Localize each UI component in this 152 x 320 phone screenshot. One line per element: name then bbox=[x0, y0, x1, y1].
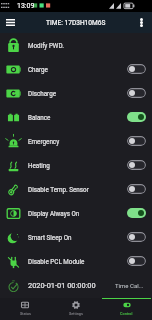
button[interactable]: Switch off bbox=[127, 160, 146, 170]
button[interactable]: Switch off bbox=[127, 184, 146, 194]
staticText: Modify PWD. bbox=[28, 42, 146, 49]
button[interactable]: Disable PCL Module bbox=[0, 249, 152, 273]
button[interactable]: Control bbox=[101, 298, 152, 320]
button[interactable]: Switch on bbox=[127, 208, 146, 218]
button[interactable]: More options bbox=[131, 12, 152, 33]
button[interactable]: Emergency bbox=[0, 129, 152, 153]
staticText: Disable Temp. Sensor bbox=[28, 186, 127, 193]
button[interactable]: Menu bbox=[0, 12, 21, 33]
staticText: TIME: 17D3H10M6S bbox=[46, 19, 106, 27]
button[interactable]: Disable Temp. Sensor bbox=[0, 177, 152, 201]
staticText: 13:09 bbox=[17, 2, 35, 10]
staticText: Status bbox=[20, 311, 31, 315]
button[interactable]: Switch off bbox=[127, 64, 146, 74]
staticText: 2020-01-01 00:00:00 bbox=[28, 281, 96, 290]
button[interactable]: Switch off bbox=[127, 136, 146, 146]
button[interactable]: Heating bbox=[0, 153, 152, 177]
button[interactable]: Switch off bbox=[127, 232, 146, 242]
staticText: Display Always On bbox=[28, 210, 127, 217]
staticText: Smart Sleep On bbox=[28, 234, 127, 241]
button[interactable]: Discharge bbox=[0, 81, 152, 105]
staticText: Charge bbox=[28, 66, 127, 73]
staticText: Time Cal... bbox=[115, 282, 144, 289]
button[interactable]: Smart Sleep On bbox=[0, 225, 152, 249]
staticText: Settings bbox=[69, 311, 83, 315]
staticText: Discharge bbox=[28, 90, 127, 97]
button[interactable]: Balance bbox=[0, 105, 152, 129]
staticText: Emergency bbox=[28, 138, 127, 145]
button[interactable]: Switch on bbox=[127, 112, 146, 122]
staticText: Balance bbox=[28, 114, 127, 121]
button[interactable]: Display Always On bbox=[0, 201, 152, 225]
button[interactable]: Modify PWD. bbox=[0, 33, 152, 57]
button[interactable]: Switch off bbox=[127, 88, 146, 98]
staticText: Heating bbox=[28, 162, 127, 169]
button[interactable]: Charge bbox=[0, 57, 152, 81]
button[interactable]: Settings bbox=[50, 298, 101, 320]
staticText: Control bbox=[120, 311, 133, 315]
button[interactable]: Status bbox=[0, 298, 50, 320]
staticText: Disable PCL Module bbox=[28, 258, 127, 265]
button[interactable]: Time Cal... bbox=[113, 280, 146, 291]
button[interactable]: Switch off bbox=[127, 256, 146, 266]
button[interactable]: 2020-01-01 00:00:00 bbox=[0, 273, 152, 297]
